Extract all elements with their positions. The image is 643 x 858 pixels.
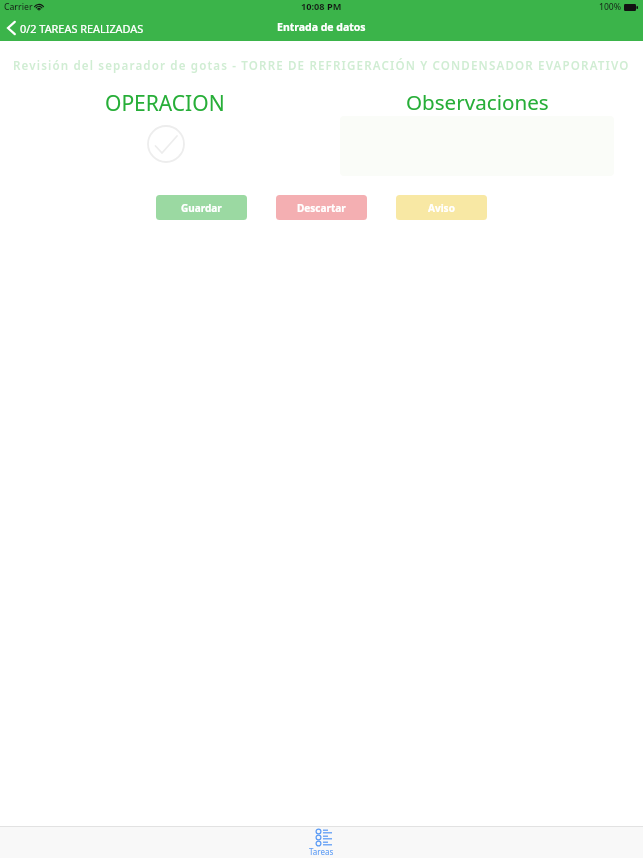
staticText: Carrier (4, 1, 33, 13)
staticText: 10:08 PM (301, 0, 342, 13)
staticText: Tareas (309, 846, 334, 857)
button[interactable]: Aviso (396, 195, 487, 220)
button[interactable]: Descartar (276, 195, 367, 220)
button[interactable]: Atrás, 0 de 2 tareas realizadas (0, 18, 150, 37)
staticText: Entrada de datos (277, 20, 366, 34)
staticText: 0/2 TAREAS REALIZADAS (20, 21, 144, 36)
button[interactable]: Tareas (289, 827, 354, 857)
staticText: OPERACION (105, 89, 225, 118)
button[interactable]: Guardar (156, 195, 247, 220)
staticText: Revisión del separador de gotas - TORRE … (13, 58, 630, 74)
staticText: Descartar (297, 201, 346, 215)
staticText: Observaciones (406, 88, 549, 116)
button[interactable]: Marcar operación realizada (147, 125, 185, 163)
staticText: Guardar (181, 201, 222, 215)
staticText: Aviso (428, 201, 455, 215)
staticText: 100% (599, 1, 622, 13)
